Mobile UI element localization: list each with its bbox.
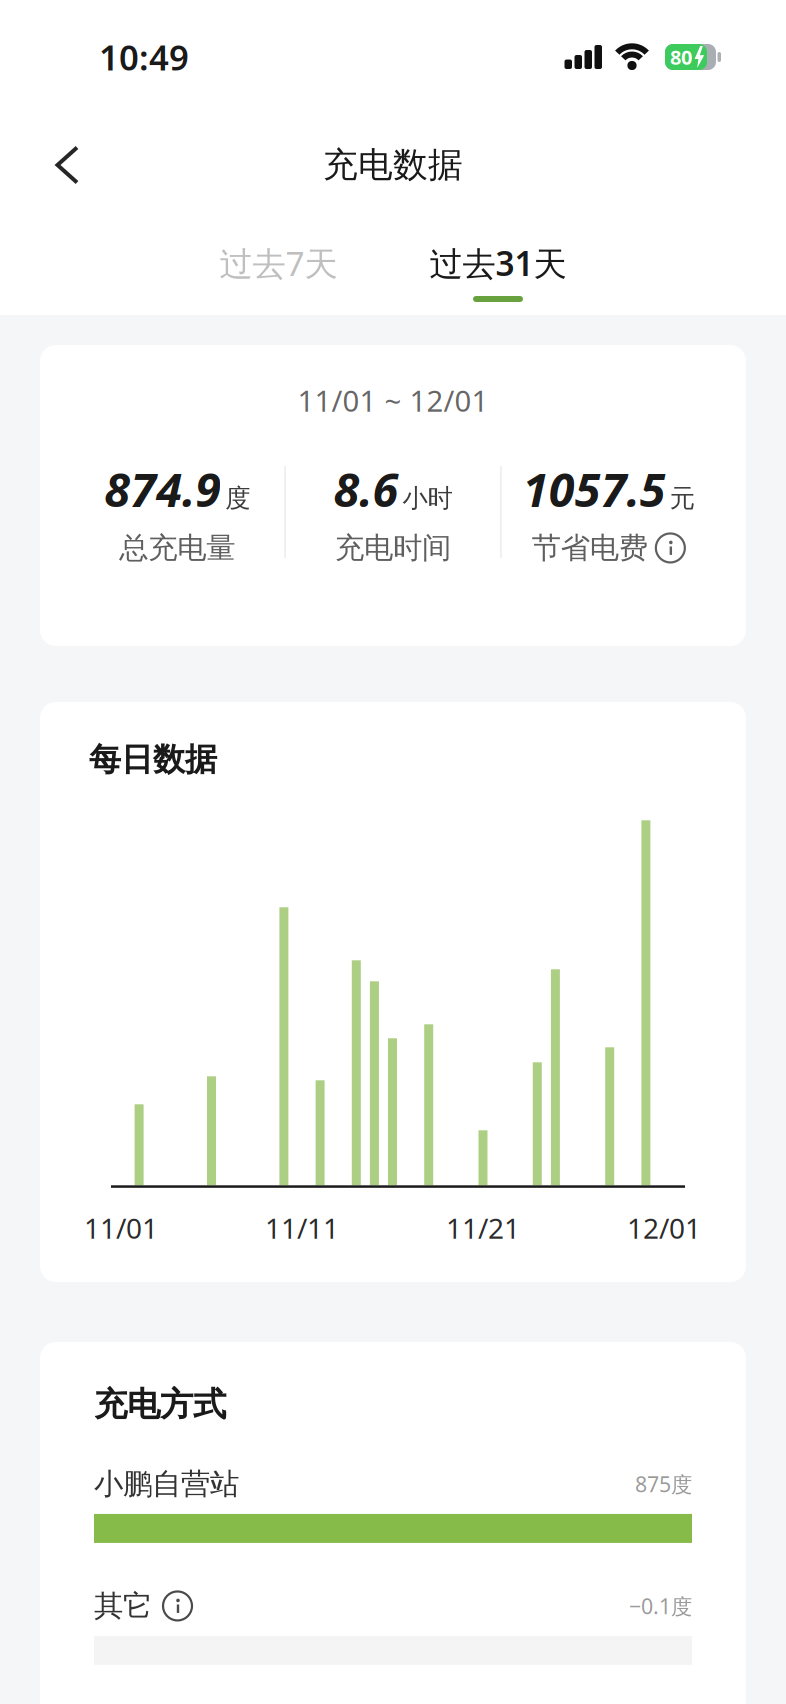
staticText: 11/11 [265,1209,339,1246]
button[interactable] [656,533,686,563]
staticText: 10:49 [99,34,189,80]
staticText: 每日数据 [89,740,217,779]
staticText: 度 [225,483,250,514]
staticText: 充电数据 [323,144,463,186]
staticText: 小时 [402,483,452,514]
staticText: 80 [670,44,692,70]
staticText: 元 [670,483,695,514]
staticText: 11/21 [446,1209,520,1246]
button[interactable]: 过去7天 [219,241,337,285]
staticText: 8.6 [333,458,398,520]
staticText: −0.1度 [629,1592,692,1620]
staticText: 12/01 [627,1209,701,1246]
button[interactable] [0,125,80,205]
staticText: 过去31天 [429,241,566,285]
staticText: 11/01 ~ 12/01 [297,381,488,420]
button[interactable] [163,1591,193,1621]
staticText: 充电时间 [335,530,451,566]
staticText: 节省电费 [532,530,648,566]
staticText: 874.9 [104,458,221,520]
staticText: 过去7天 [219,241,337,285]
staticText: 875度 [635,1470,692,1498]
staticText: 其它 [94,1588,152,1624]
staticText: 1057.5 [523,458,666,520]
staticText: 充电方式 [94,1384,226,1425]
staticText: 11/01 [84,1209,158,1246]
staticText: 总充电量 [119,530,235,566]
staticText: 小鹏自营站 [94,1466,239,1502]
button[interactable]: 过去31天 [429,241,566,285]
